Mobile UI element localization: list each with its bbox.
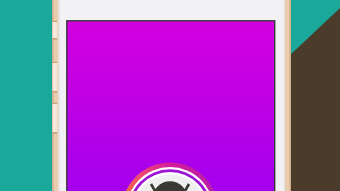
button[interactable]: Android app promotional phone mockup [0, 0, 340, 191]
